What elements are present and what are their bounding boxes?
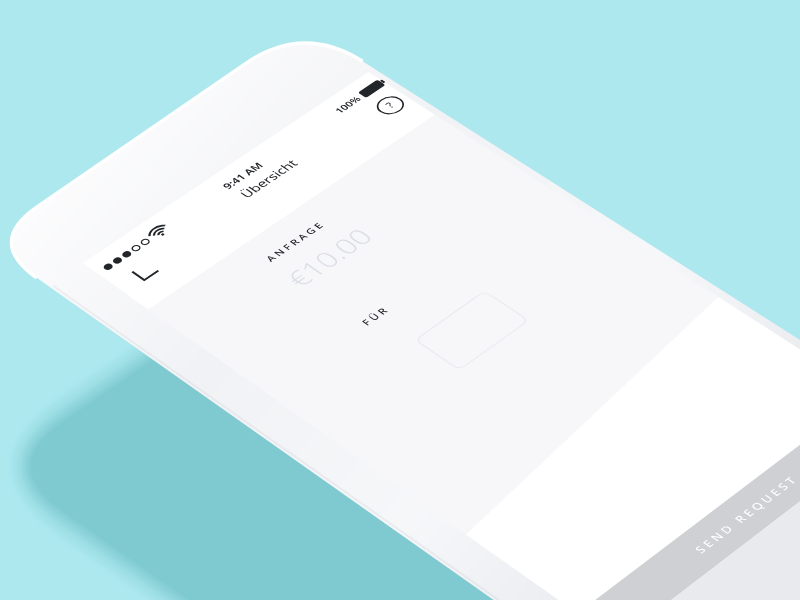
staticText: S E N D R E Q U E S T [691,474,800,556]
button[interactable]: S E N D R E Q U E S T [577,393,800,600]
staticText: Übersicht [236,156,302,201]
staticText: 9:41 AM [219,159,267,192]
staticText: 100% [332,94,364,115]
staticText: A N F R A G E [262,220,326,264]
staticText: €10.00 [278,222,381,293]
staticText: F Ü R [358,305,391,327]
staticText: ? [382,100,398,110]
